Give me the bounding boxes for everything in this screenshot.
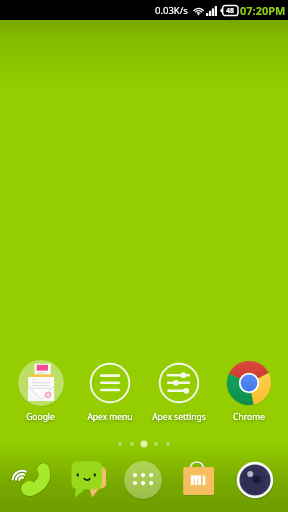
staticText: 07:20PM: [240, 3, 286, 18]
button[interactable]: Mi Store: [171, 460, 227, 500]
button[interactable]: Messaging: [60, 460, 115, 500]
button[interactable]: Phone: [5, 460, 60, 500]
staticText: Chrome: [233, 411, 265, 423]
staticText: Apex menu: [87, 411, 133, 423]
staticText: Google: [26, 411, 55, 423]
staticText: 0.03K/s: [155, 4, 188, 17]
button[interactable]: Google: [6, 360, 75, 423]
staticText: 48: [226, 6, 235, 16]
button[interactable]: All apps: [115, 460, 171, 500]
button[interactable]: Chrome: [214, 360, 284, 423]
button[interactable]: Apex menu: [75, 360, 144, 423]
button[interactable]: Camera: [227, 460, 283, 500]
button[interactable]: Apex settings: [144, 360, 214, 423]
staticText: Apex settings: [152, 411, 206, 423]
